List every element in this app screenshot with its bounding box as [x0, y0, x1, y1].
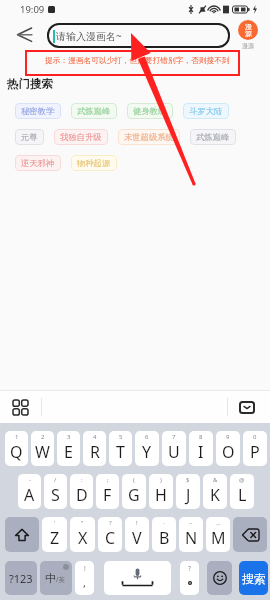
staticText: ~: [189, 519, 193, 527]
button[interactable]: 末世超级系统: [118, 129, 180, 145]
button[interactable]: ): [149, 474, 173, 509]
staticText: &: [213, 476, 218, 484]
button[interactable]: @: [230, 474, 254, 509]
staticText: !: [84, 564, 86, 573]
button[interactable]: 搜索: [239, 561, 268, 595]
staticText: 元尊: [21, 132, 38, 142]
staticText: 2: [41, 433, 45, 441]
staticText: 6: [145, 433, 149, 441]
button[interactable]: 9: [216, 431, 240, 466]
button[interactable]: Shift: [5, 517, 39, 552]
button[interactable]: 8: [189, 431, 213, 466]
staticText: Q: [10, 441, 23, 463]
staticText: I: [198, 441, 204, 463]
staticText: C: [105, 527, 116, 549]
staticText: 5: [119, 433, 123, 441]
button[interactable]: :: [70, 474, 93, 509]
button[interactable]: 元尊: [15, 129, 44, 145]
staticText: 末世超级系统: [124, 132, 174, 142]
button[interactable]: 武炼巅峰: [71, 103, 117, 119]
staticText: F: [103, 484, 112, 506]
staticText: /英: [56, 575, 65, 584]
button[interactable]: ?: [98, 517, 122, 552]
button[interactable]: 我独自升级: [54, 129, 108, 145]
button[interactable]: &: [203, 474, 227, 509]
button[interactable]: “: [70, 517, 95, 552]
button[interactable]: 武炼巅峰: [190, 129, 236, 145]
button[interactable]: 0: [243, 431, 267, 466]
button[interactable]: ;: [96, 474, 119, 509]
button[interactable]: ?: [180, 561, 199, 595]
button[interactable]: ·: [152, 517, 176, 552]
button[interactable]: Hide keyboard: [239, 401, 255, 414]
staticText: 斗罗大陆: [189, 106, 223, 116]
button[interactable]: 1: [5, 431, 28, 466]
staticText: 0: [253, 433, 257, 441]
button[interactable]: 7: [162, 431, 186, 466]
staticText: :: [81, 476, 83, 484]
button[interactable]: 逆天邪神: [15, 155, 61, 171]
button[interactable]: 6: [135, 431, 159, 466]
button[interactable]: 3: [57, 431, 80, 466]
staticText: 漫 源: [245, 22, 252, 38]
button[interactable]: /: [44, 474, 67, 509]
staticText: !: [136, 519, 138, 527]
button[interactable]: (: [122, 474, 146, 509]
button[interactable]: ?123: [5, 561, 37, 595]
staticText: 9: [226, 433, 230, 441]
staticText: ): [160, 476, 162, 484]
staticText: 漫源: [242, 42, 254, 50]
staticText: 我独自升级: [60, 132, 102, 142]
staticText: $: [186, 476, 190, 484]
staticText: ‘: [54, 519, 56, 527]
staticText: R: [90, 441, 100, 463]
button[interactable]: Comic source: [238, 20, 258, 50]
button[interactable]: 4: [83, 431, 106, 466]
button[interactable]: Delete: [233, 517, 267, 552]
staticText: 19:09: [20, 3, 45, 16]
button[interactable]: Back: [11, 23, 37, 49]
button[interactable]: 2: [31, 431, 54, 466]
staticText: (: [133, 476, 135, 484]
staticText: V: [132, 527, 142, 549]
button[interactable]: 物种起源: [71, 155, 117, 171]
button[interactable]: Switch language: [40, 561, 72, 595]
button[interactable]: ‘: [42, 517, 67, 552]
button[interactable]: $: [176, 474, 200, 509]
staticText: Y: [142, 441, 152, 463]
staticText: 提示：漫画名可以少打，但是要打错别字，否则搜不到: [45, 56, 230, 66]
staticText: ,: [83, 575, 86, 590]
button[interactable]: 斗罗大陆: [183, 103, 229, 119]
button[interactable]: 请输入漫画名~: [47, 23, 230, 48]
button[interactable]: !: [125, 517, 149, 552]
button[interactable]: Emoji: [207, 561, 232, 595]
staticText: K: [210, 484, 220, 506]
staticText: 秘密教学: [21, 106, 55, 116]
staticText: 武炼巅峰: [77, 106, 111, 116]
staticText: 4: [93, 433, 97, 441]
staticText: W: [35, 441, 50, 463]
staticText: 7: [172, 433, 176, 441]
button[interactable]: !: [75, 561, 94, 595]
staticText: H: [155, 484, 167, 506]
button[interactable]: …: [206, 517, 230, 552]
button[interactable]: ~: [179, 517, 203, 552]
staticText: …: [216, 519, 221, 527]
button[interactable]: Apps: [9, 396, 31, 418]
button[interactable]: 5: [109, 431, 132, 466]
button[interactable]: -: [18, 474, 41, 509]
staticText: J: [186, 484, 191, 506]
staticText: 1: [15, 433, 19, 441]
staticText: E: [64, 441, 73, 463]
staticText: 物种起源: [77, 158, 111, 168]
staticText: U: [168, 441, 180, 463]
staticText: T: [116, 441, 125, 463]
button[interactable]: Space: [104, 561, 171, 595]
button[interactable]: 健身教练: [127, 103, 173, 119]
staticText: “: [81, 519, 84, 527]
button[interactable]: 秘密教学: [15, 103, 61, 119]
staticText: @: [239, 476, 245, 484]
staticText: L: [238, 484, 247, 506]
staticText: B: [159, 527, 170, 549]
staticText: -: [29, 476, 31, 484]
